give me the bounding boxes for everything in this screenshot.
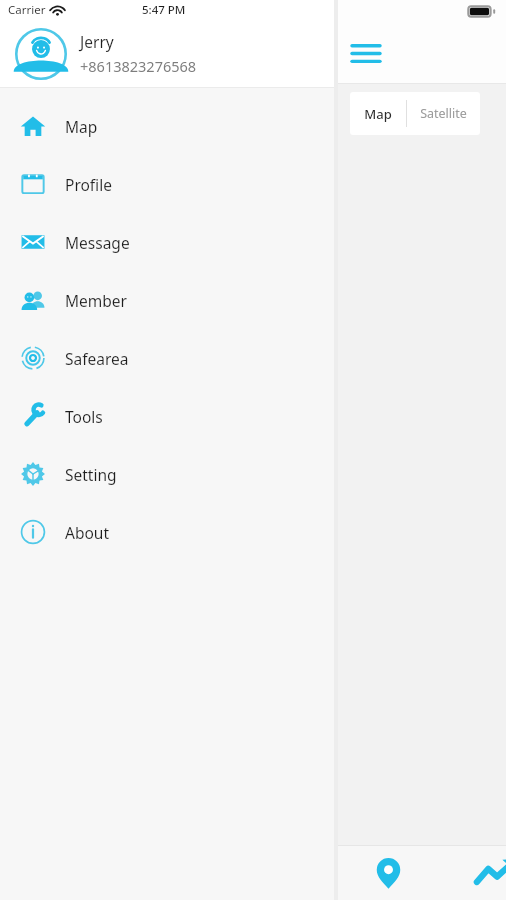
staticText: Setting bbox=[65, 464, 117, 485]
staticText: Map bbox=[65, 116, 98, 137]
staticText: Profile bbox=[65, 174, 112, 195]
staticText: Jerry bbox=[80, 31, 114, 52]
staticText: Member bbox=[65, 290, 127, 311]
button[interactable]: Setting bbox=[0, 445, 334, 503]
staticText: About bbox=[65, 522, 109, 543]
button[interactable]: Map bbox=[0, 97, 334, 155]
staticText: Carrier bbox=[8, 2, 46, 18]
button[interactable]: Open navigation menu bbox=[344, 33, 388, 73]
staticText: Tools bbox=[65, 406, 103, 427]
staticText: Map bbox=[364, 105, 392, 123]
button[interactable]: Profile bbox=[0, 155, 334, 213]
staticText: +8613823276568 bbox=[80, 56, 197, 76]
button[interactable]: Safearea bbox=[0, 329, 334, 387]
button[interactable]: About bbox=[0, 503, 334, 561]
button[interactable]: Message bbox=[0, 213, 334, 271]
button[interactable]: Locate bbox=[338, 846, 438, 900]
staticText: Satellite bbox=[420, 105, 467, 122]
staticText: Safearea bbox=[65, 348, 129, 369]
button[interactable]: Jerry bbox=[0, 20, 334, 87]
button[interactable]: Tools bbox=[0, 387, 334, 445]
button[interactable]: Member bbox=[0, 271, 334, 329]
staticText: Message bbox=[65, 232, 130, 253]
button[interactable]: Satellite bbox=[407, 92, 480, 135]
button[interactable]: Map bbox=[350, 92, 406, 135]
button[interactable]: Track history bbox=[438, 846, 506, 900]
staticText: 5:47 PM bbox=[142, 2, 186, 18]
